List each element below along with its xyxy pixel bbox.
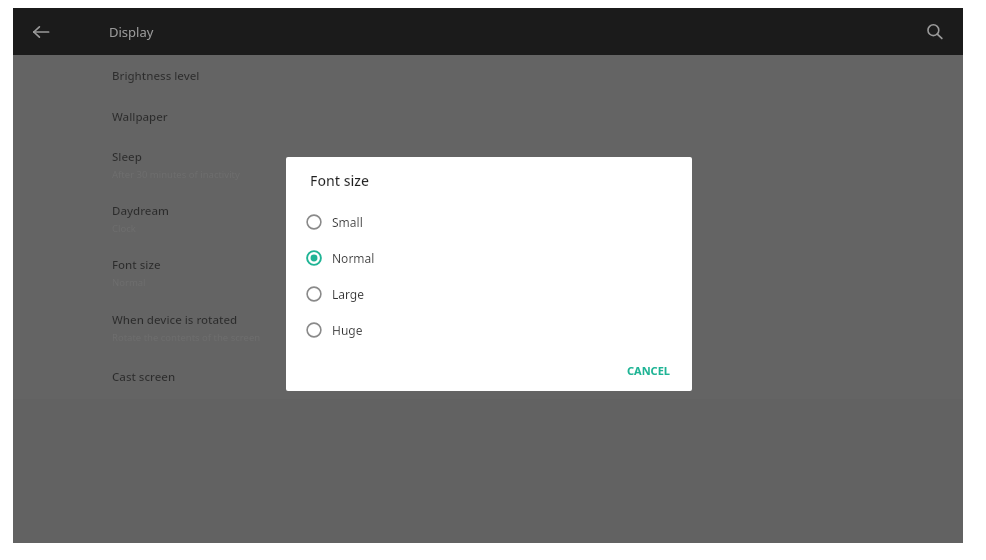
- staticText: Small: [332, 214, 363, 230]
- staticText: Cast screen: [112, 369, 176, 385]
- staticText: Wallpaper: [112, 109, 168, 125]
- staticText: Display: [109, 23, 154, 41]
- button[interactable]: Daydream: [13, 192, 963, 246]
- button[interactable]: Normal: [286, 240, 692, 276]
- button[interactable]: CANCEL: [617, 357, 680, 384]
- staticText: Sleep: [112, 149, 142, 165]
- staticText: When device is rotated: [112, 312, 238, 328]
- staticText: Huge: [332, 322, 363, 338]
- staticText: Font size: [112, 257, 161, 273]
- button[interactable]: Huge: [286, 312, 692, 348]
- button[interactable]: Brightness level: [13, 55, 963, 96]
- button[interactable]: Font size: [13, 246, 963, 300]
- staticText: Normal: [332, 250, 375, 266]
- staticText: Font size: [310, 171, 370, 190]
- staticText: CANCEL: [627, 363, 670, 378]
- button[interactable]: When device is rotated: [13, 300, 963, 355]
- button[interactable]: Search: [907, 8, 963, 55]
- staticText: Large: [332, 286, 365, 302]
- button[interactable]: Large: [286, 276, 692, 312]
- button[interactable]: Back: [13, 8, 69, 55]
- button[interactable]: Sleep: [13, 137, 963, 192]
- button[interactable]: Cast screen: [13, 355, 963, 399]
- button[interactable]: Small: [286, 204, 692, 240]
- staticText: Brightness level: [112, 68, 200, 84]
- staticText: Daydream: [112, 203, 169, 219]
